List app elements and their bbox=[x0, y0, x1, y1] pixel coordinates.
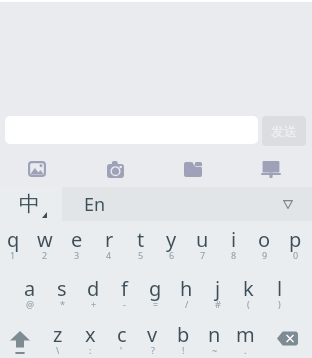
staticText: 9 bbox=[262, 249, 268, 261]
button[interactable]: z bbox=[42, 312, 74, 358]
staticText: ( bbox=[247, 298, 250, 310]
button[interactable]: Camera bbox=[76, 151, 154, 187]
button[interactable]: l bbox=[264, 266, 295, 312]
button[interactable]: c bbox=[106, 312, 137, 358]
staticText: 3 bbox=[74, 249, 80, 261]
button[interactable]: b bbox=[168, 312, 199, 358]
staticText: 2 bbox=[42, 249, 48, 261]
button[interactable]: y bbox=[156, 221, 187, 266]
staticText: h bbox=[180, 275, 193, 302]
button[interactable]: x bbox=[74, 312, 106, 358]
staticText: ' bbox=[120, 344, 123, 356]
staticText: ? bbox=[151, 344, 155, 356]
staticText: e bbox=[71, 226, 83, 253]
staticText: 7 bbox=[200, 249, 206, 261]
staticText: ~ bbox=[212, 344, 218, 356]
button[interactable]: Screen share bbox=[232, 151, 310, 187]
button[interactable]: 发送 bbox=[262, 116, 306, 146]
button[interactable]: w bbox=[29, 221, 61, 266]
staticText: s bbox=[57, 275, 67, 302]
button[interactable]: En bbox=[62, 187, 312, 221]
staticText: d bbox=[87, 275, 100, 302]
button[interactable]: Gallery bbox=[0, 151, 76, 187]
staticText: 中 bbox=[19, 191, 40, 217]
button[interactable]: f bbox=[109, 266, 140, 312]
staticText: + bbox=[91, 298, 97, 310]
staticText: l bbox=[277, 275, 283, 302]
staticText: w bbox=[37, 226, 53, 253]
staticText: 发送 bbox=[271, 123, 297, 139]
staticText: a bbox=[24, 275, 36, 302]
button[interactable]: j bbox=[202, 266, 233, 312]
staticText: ! bbox=[182, 344, 185, 356]
staticText: - bbox=[123, 298, 126, 310]
button[interactable]: Backspace bbox=[261, 312, 311, 358]
button[interactable]: i bbox=[218, 221, 249, 266]
button[interactable]: g bbox=[140, 266, 171, 312]
button[interactable]: s bbox=[46, 266, 78, 312]
staticText: c bbox=[117, 321, 127, 348]
staticText: b bbox=[177, 321, 190, 348]
staticText: @ bbox=[26, 298, 35, 310]
staticText: y bbox=[166, 226, 177, 253]
staticText: f bbox=[121, 275, 128, 302]
staticText: k bbox=[243, 275, 254, 302]
staticText: q bbox=[7, 226, 20, 253]
staticText: = bbox=[153, 298, 159, 310]
button[interactable]: u bbox=[187, 221, 218, 266]
button[interactable]: n bbox=[199, 312, 230, 358]
button[interactable]: 中 bbox=[0, 187, 62, 221]
button[interactable]: r bbox=[93, 221, 125, 266]
staticText: x bbox=[85, 321, 96, 348]
staticText: En bbox=[84, 192, 106, 217]
staticText: 5 bbox=[138, 249, 144, 261]
button[interactable]: q bbox=[0, 221, 29, 266]
staticText: 0 bbox=[293, 249, 299, 261]
staticText: v bbox=[147, 321, 158, 348]
button[interactable]: h bbox=[171, 266, 202, 312]
staticText: n bbox=[208, 321, 221, 348]
staticText: i bbox=[231, 226, 237, 253]
button[interactable]: Files bbox=[154, 151, 232, 187]
button[interactable]: m bbox=[230, 312, 261, 358]
staticText: 6 bbox=[169, 249, 175, 261]
staticText: j bbox=[215, 275, 221, 302]
staticText: g bbox=[149, 275, 162, 302]
staticText: u bbox=[196, 226, 209, 253]
button[interactable]: v bbox=[137, 312, 168, 358]
staticText: * bbox=[60, 298, 65, 310]
button[interactable]: e bbox=[61, 221, 93, 266]
staticText: 8 bbox=[231, 249, 237, 261]
button[interactable]: Shift bbox=[0, 312, 42, 358]
button[interactable]: p bbox=[280, 221, 311, 266]
staticText: r bbox=[105, 226, 114, 253]
staticText: / bbox=[185, 298, 189, 310]
button[interactable]: k bbox=[233, 266, 264, 312]
staticText: # bbox=[215, 298, 221, 310]
button[interactable]: a bbox=[14, 266, 46, 312]
staticText: m bbox=[236, 321, 255, 348]
button[interactable]: d bbox=[78, 266, 109, 312]
staticText: \ bbox=[56, 344, 60, 356]
staticText: : bbox=[89, 344, 92, 356]
staticText: p bbox=[289, 226, 302, 253]
staticText: 1 bbox=[10, 249, 16, 261]
staticText: o bbox=[258, 226, 271, 253]
staticText: ) bbox=[278, 298, 281, 310]
button[interactable]: t bbox=[125, 221, 156, 266]
staticText: t bbox=[137, 226, 145, 253]
staticText: 4 bbox=[106, 249, 112, 261]
staticText: . bbox=[244, 344, 247, 356]
button[interactable]: o bbox=[249, 221, 280, 266]
staticText: z bbox=[53, 321, 63, 348]
